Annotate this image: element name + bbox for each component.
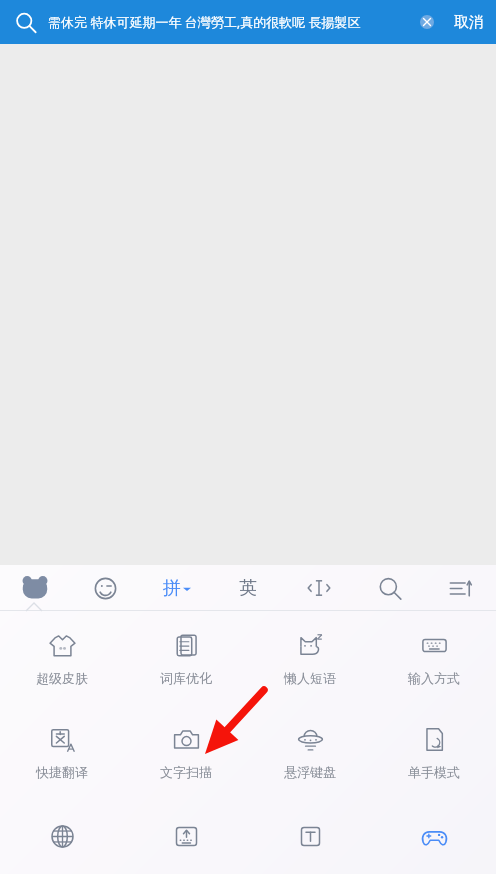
button[interactable]: Games: [372, 799, 496, 874]
button[interactable]: 超级皮肤: [0, 611, 124, 705]
staticText: 悬浮键盘: [284, 764, 336, 780]
button[interactable]: 取消: [444, 4, 494, 41]
button[interactable]: 单手模式: [372, 705, 496, 799]
button[interactable]: 拼: [141, 565, 212, 611]
button[interactable]: Emoji: [70, 565, 141, 611]
staticText: 英: [239, 577, 257, 600]
button[interactable]: Clear text: [414, 9, 440, 35]
staticText: 取消: [454, 13, 484, 32]
staticText: 需休完 特休可延期一年 台灣勞工,真的很軟呢 長揚製区: [48, 13, 361, 31]
button[interactable]: Text settings: [248, 799, 372, 874]
staticText: 文字扫描: [160, 764, 212, 780]
button[interactable]: Search: [354, 565, 425, 611]
button[interactable]: Language: [0, 799, 124, 874]
button[interactable]: 输入方式: [372, 611, 496, 705]
button[interactable]: 词库优化: [124, 611, 248, 705]
staticText: 拼: [163, 577, 181, 600]
button[interactable]: 快捷翻译: [0, 705, 124, 799]
button[interactable]: Move cursor: [283, 565, 354, 611]
button[interactable]: 文字扫描: [124, 705, 248, 799]
button[interactable]: 懒人短语: [248, 611, 372, 705]
button[interactable]: Baidu input logo: [0, 565, 70, 611]
button[interactable]: Hide keyboard: [124, 799, 248, 874]
button[interactable]: More options: [425, 565, 496, 611]
button[interactable]: 英: [212, 565, 283, 611]
staticText: 懒人短语: [284, 670, 336, 686]
staticText: 输入方式: [408, 670, 460, 686]
button[interactable]: 悬浮键盘: [248, 705, 372, 799]
staticText: 超级皮肤: [36, 670, 88, 686]
button[interactable]: Search: [6, 3, 44, 41]
staticText: 词库优化: [160, 670, 212, 686]
staticText: 快捷翻译: [36, 764, 88, 780]
staticText: 单手模式: [408, 764, 460, 780]
